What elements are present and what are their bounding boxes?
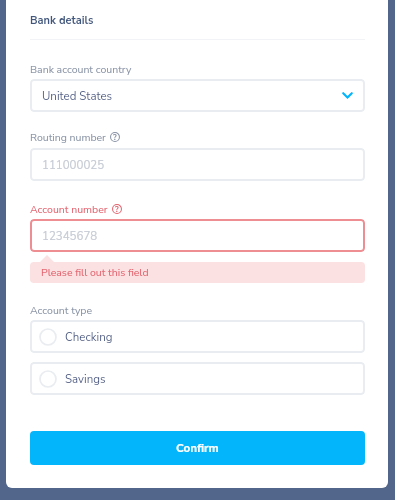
- button[interactable]: Confirm: [30, 431, 365, 465]
- staticText: Bank account country: [30, 62, 132, 76]
- staticText: Account type: [30, 303, 93, 317]
- staticText: 12345678: [42, 228, 98, 244]
- staticText: Bank details: [30, 13, 94, 28]
- staticText: Account number: [30, 202, 108, 216]
- button[interactable]: 12345678: [30, 219, 365, 252]
- other: More information: [112, 204, 122, 214]
- button[interactable]: Savings: [30, 362, 365, 395]
- button[interactable]: 111000025: [30, 148, 365, 181]
- other: Open country list: [342, 92, 353, 99]
- staticText: Please fill out this field: [41, 265, 149, 279]
- other: More information: [110, 132, 120, 142]
- staticText: ?: [113, 132, 117, 142]
- staticText: ?: [115, 204, 119, 214]
- button[interactable]: United States: [30, 79, 365, 112]
- staticText: Confirm: [176, 440, 219, 456]
- staticText: Routing number: [30, 130, 106, 144]
- staticText: Checking: [65, 329, 113, 345]
- staticText: 111000025: [42, 157, 105, 173]
- staticText: Savings: [65, 371, 106, 387]
- staticText: United States: [42, 88, 113, 104]
- button[interactable]: Checking: [30, 320, 365, 353]
